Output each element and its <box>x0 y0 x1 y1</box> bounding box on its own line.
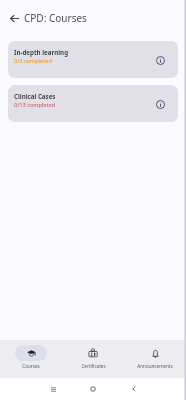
staticText: CPD: Courses <box>24 11 87 25</box>
button[interactable]: Announcements <box>124 340 186 378</box>
button[interactable]: Info <box>153 53 167 67</box>
staticText: Clinical Cases <box>14 92 56 100</box>
button[interactable]: Back <box>126 381 142 397</box>
button[interactable]: In-depth learning <box>8 41 178 78</box>
button[interactable]: Recent apps <box>45 381 61 397</box>
button[interactable]: Clinical Cases <box>8 85 178 122</box>
staticText: Certificates <box>81 363 106 369</box>
button[interactable]: Info <box>153 97 167 111</box>
staticText: Announcements <box>137 363 173 369</box>
button[interactable]: Back <box>5 9 23 27</box>
staticText: 0/13 completed <box>14 101 56 109</box>
button[interactable]: Home <box>85 381 101 397</box>
button[interactable]: Courses <box>0 340 62 378</box>
staticText: In-depth learning <box>14 48 69 56</box>
staticText: 0/3 completed <box>14 57 52 65</box>
staticText: Courses <box>22 363 40 369</box>
button[interactable]: Certificates <box>62 340 124 378</box>
